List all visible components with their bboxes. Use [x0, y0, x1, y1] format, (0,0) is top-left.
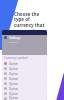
button[interactable]: Option — [4, 86, 47, 91]
button[interactable]: Option — [4, 71, 47, 76]
staticText: Option — [9, 87, 19, 91]
button[interactable]: Option — [4, 76, 47, 81]
button[interactable] — [2, 30, 47, 35]
staticText: Currency symbol — [4, 56, 28, 60]
button[interactable]: Option — [4, 91, 47, 96]
button[interactable]: Settings — [4, 36, 45, 43]
button[interactable]: Option — [4, 66, 47, 71]
staticText: Option — [9, 67, 19, 71]
staticText: Option — [9, 96, 19, 100]
staticText: Choose the type of currency that you nee… — [14, 11, 47, 35]
button[interactable]: Option — [4, 61, 47, 66]
staticText: Option — [9, 62, 19, 66]
staticText: Option — [9, 82, 19, 86]
button[interactable]: Option — [4, 81, 47, 86]
button[interactable]: Option — [4, 96, 47, 100]
staticText: Option — [9, 72, 19, 76]
staticText: Option — [9, 92, 19, 96]
staticText: Option — [9, 77, 19, 81]
staticText: Settings — [9, 36, 21, 40]
staticText: Default — [9, 40, 18, 43]
